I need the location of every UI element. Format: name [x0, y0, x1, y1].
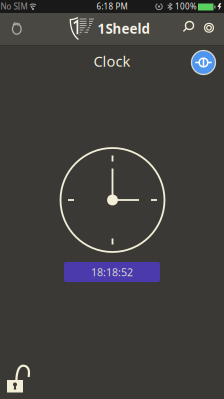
- button[interactable]: Pull shield: [5, 15, 33, 43]
- button[interactable]: Scan: [195, 14, 223, 42]
- button[interactable]: Search: [173, 14, 201, 42]
- staticText: 6:18 PM: [96, 1, 127, 12]
- staticText: 18:18:52: [91, 265, 133, 279]
- staticText: 1Sheeld: [97, 20, 149, 37]
- button[interactable]: Connect shield: [190, 49, 216, 75]
- button[interactable]: Unlock: [2, 357, 38, 399]
- staticText: No SIM: [0, 1, 27, 12]
- staticText: 100%: [175, 1, 197, 12]
- staticText: Clock: [93, 51, 130, 71]
